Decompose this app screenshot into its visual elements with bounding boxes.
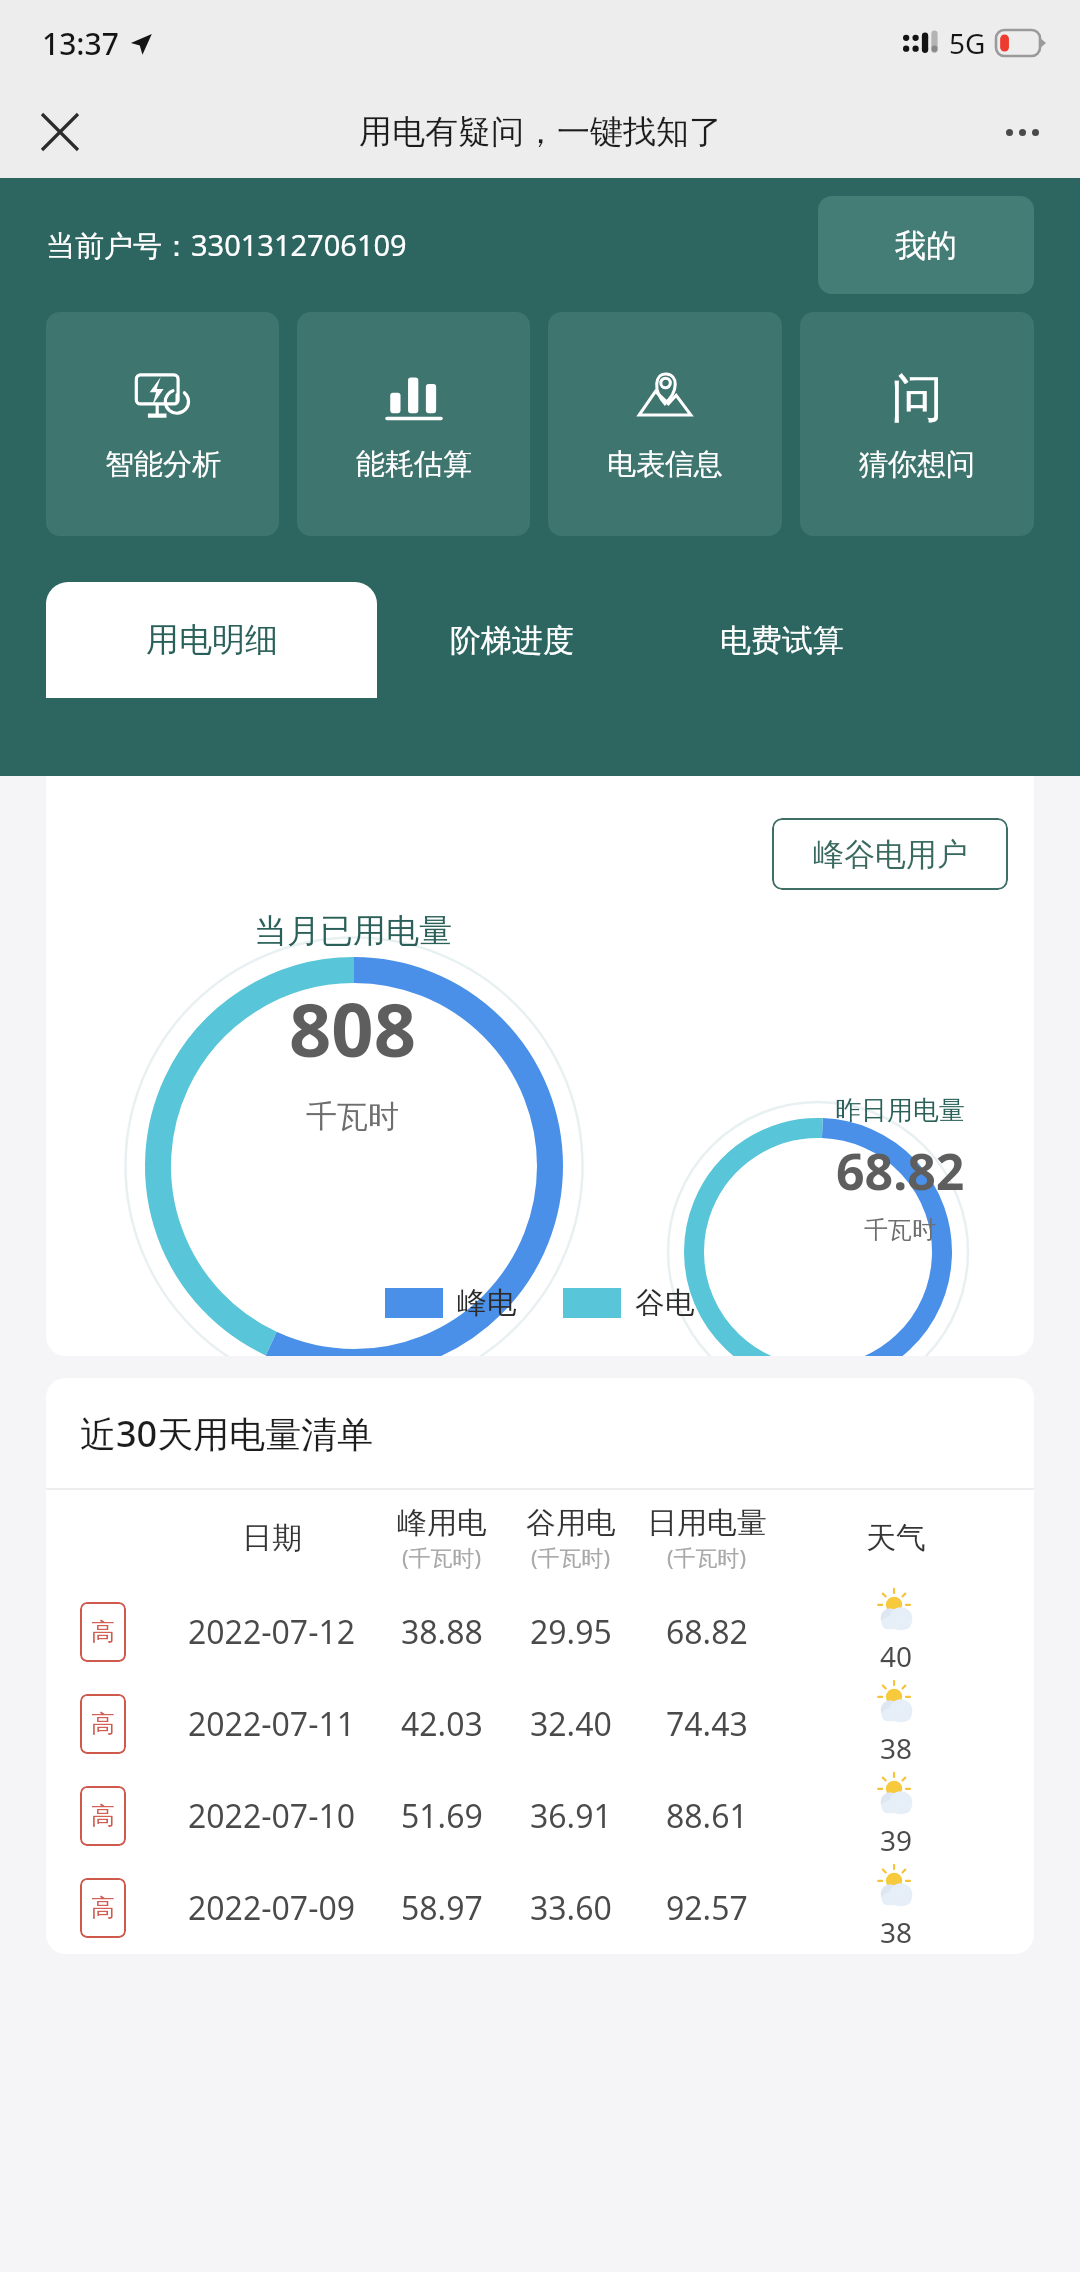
staticText: 用电明细	[146, 619, 278, 661]
staticText: 千瓦时	[306, 1097, 399, 1136]
staticText: 5G	[949, 24, 986, 62]
staticText: 阶梯进度	[450, 621, 574, 660]
staticText: 42.03	[401, 1702, 483, 1746]
staticText: 高	[91, 1893, 115, 1923]
staticText: 日期	[242, 1519, 302, 1557]
staticText: (千瓦时)	[531, 1542, 611, 1572]
staticText: 51.69	[401, 1794, 483, 1838]
staticText: 问	[891, 366, 943, 428]
staticText: 用电有疑问，一键找知了	[359, 111, 722, 153]
staticText: 千瓦时	[864, 1215, 936, 1245]
staticText: 谷用电	[526, 1504, 616, 1542]
staticText: 当月已用电量	[254, 910, 452, 952]
staticText: 能耗估算	[356, 446, 472, 483]
staticText: 日用电量	[647, 1504, 767, 1542]
staticText: 峰用电	[397, 1504, 487, 1542]
staticText: 电费试算	[720, 621, 844, 660]
staticText: (千瓦时)	[667, 1542, 747, 1572]
button[interactable]: 高	[80, 1862, 1012, 1954]
staticText: (千瓦时)	[402, 1542, 482, 1572]
button[interactable]: 高	[80, 1770, 1012, 1862]
button[interactable]: 用电明细	[46, 582, 377, 698]
staticText: 29.95	[530, 1610, 612, 1654]
button[interactable]: 高	[80, 1678, 1012, 1770]
staticText: 我的	[895, 226, 957, 265]
staticText: 电表信息	[607, 446, 723, 483]
staticText: 68.82	[836, 1137, 965, 1205]
staticText: 92.57	[666, 1886, 748, 1930]
button[interactable]: 阶梯进度	[377, 582, 647, 698]
staticText: 昨日用电量	[835, 1094, 965, 1127]
button[interactable]: 电表信息	[548, 312, 782, 536]
staticText: 33.60	[530, 1886, 612, 1930]
staticText: 68.82	[666, 1610, 748, 1654]
button[interactable]: 问	[800, 312, 1034, 536]
button[interactable]: 峰谷电用户	[772, 818, 1008, 890]
staticText: 38	[880, 1913, 913, 1951]
staticText: 谷电	[635, 1284, 695, 1322]
button[interactable]: 能耗估算	[297, 312, 530, 536]
staticText: 74.43	[666, 1702, 748, 1746]
staticText: 38	[880, 1729, 913, 1767]
staticText: 峰谷电用户	[813, 835, 968, 874]
staticText: 高	[91, 1801, 115, 1831]
staticText: 36.91	[530, 1794, 612, 1838]
button[interactable]: 高	[80, 1586, 1012, 1678]
staticText: 38.88	[401, 1610, 483, 1654]
staticText: 39	[880, 1821, 913, 1859]
button[interactable]: 我的	[818, 196, 1034, 294]
button[interactable]: More options	[990, 100, 1054, 164]
staticText: 近30天用电量清单	[80, 1409, 374, 1458]
staticText: 13:37	[42, 23, 119, 64]
staticText: 智能分析	[105, 446, 221, 483]
staticText: 高	[91, 1709, 115, 1739]
staticText: 高	[91, 1617, 115, 1647]
staticText: 2022-07-10	[188, 1794, 356, 1838]
staticText: 40	[880, 1637, 913, 1675]
button[interactable]: Close	[28, 100, 92, 164]
button[interactable]: 智能分析	[46, 312, 279, 536]
staticText: 当前户号：3301312706109	[46, 225, 407, 265]
staticText: 88.61	[666, 1794, 748, 1838]
staticText: 2022-07-09	[188, 1886, 356, 1930]
staticText: 猜你想问	[859, 446, 975, 483]
staticText: 32.40	[530, 1702, 612, 1746]
staticText: 峰电	[457, 1284, 517, 1322]
staticText: 2022-07-11	[188, 1702, 356, 1746]
staticText: 808	[289, 978, 416, 1079]
staticText: 58.97	[401, 1886, 483, 1930]
staticText: 2022-07-12	[188, 1610, 356, 1654]
staticText: 天气	[866, 1519, 926, 1557]
button[interactable]: 电费试算	[647, 582, 917, 698]
